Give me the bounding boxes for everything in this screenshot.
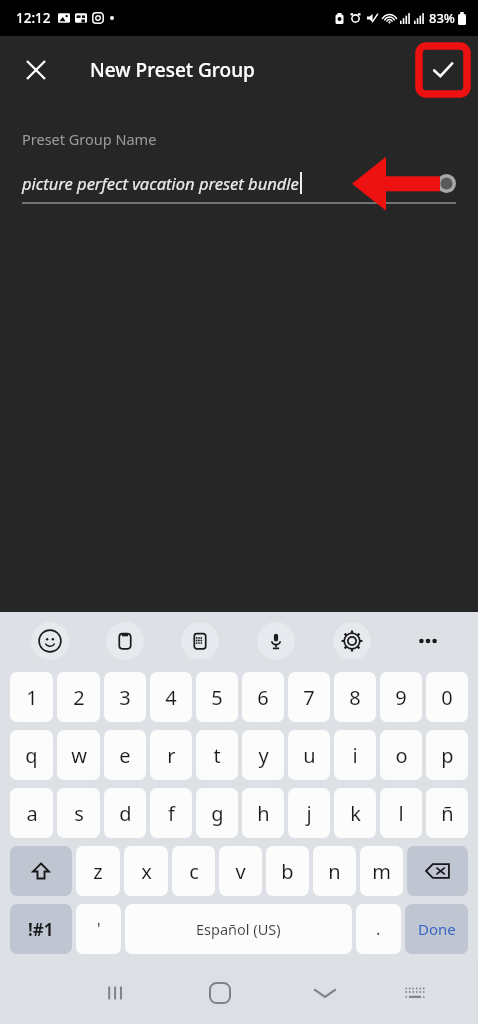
staticText: 83% [429,9,455,27]
button[interactable]: q [10,730,53,780]
button[interactable]: 5 [196,672,238,722]
button[interactable]: z [76,846,120,896]
button[interactable]: k [334,788,376,838]
button[interactable]: o [380,730,422,780]
button[interactable]: t [196,730,238,780]
button[interactable]: Switch keyboard [371,962,459,1024]
button[interactable]: d [104,788,146,838]
staticText: d [119,800,132,827]
button[interactable]: . [356,904,401,954]
staticText: l [398,800,404,827]
button[interactable]: u [288,730,330,780]
button[interactable]: w [57,730,100,780]
button[interactable]: l [380,788,422,838]
staticText: c [189,858,199,885]
button[interactable]: n [313,846,356,896]
button[interactable]: 9 [380,672,422,722]
staticText: Español (US) [196,919,281,939]
button[interactable]: p [426,730,468,780]
staticText: z [93,858,103,885]
staticText: 4 [165,684,177,711]
button[interactable]: e [104,730,146,780]
staticText: f [168,800,175,827]
button[interactable]: Close [12,46,60,94]
button[interactable]: !#1 [10,904,72,954]
other: Clear [437,174,456,193]
button[interactable]: 6 [242,672,284,722]
button[interactable]: x [124,846,168,896]
staticText: b [281,858,294,885]
button[interactable]: Emoji [12,616,87,666]
staticText: . [376,918,381,940]
staticText: picture perfect vacation preset bundle [22,172,299,194]
button[interactable]: Shift [10,846,72,896]
button[interactable]: m [360,846,403,896]
staticText: 7 [303,684,315,711]
staticText: i [352,742,358,769]
staticText: ' [97,918,101,940]
staticText: 6 [257,684,269,711]
button[interactable]: Recents [69,962,162,1024]
button[interactable]: 0 [426,672,468,722]
button[interactable]: 4 [150,672,192,722]
button[interactable]: Done [405,904,468,954]
button[interactable]: i [334,730,376,780]
button[interactable]: 3 [104,672,146,722]
staticText: e [119,742,131,769]
staticText: 5 [211,684,223,711]
button[interactable]: Clipboard [87,616,162,666]
button[interactable]: r [150,730,192,780]
staticText: 12:12 [16,9,51,27]
button[interactable]: s [57,788,100,838]
staticText: 2 [73,684,85,711]
button[interactable]: 7 [288,672,330,722]
button[interactable]: Settings [314,616,390,666]
staticText: Preset Group Name [22,129,157,149]
staticText: m [372,858,391,885]
staticText: !#1 [28,918,54,941]
button[interactable]: Backspace [407,846,468,896]
staticText: 0 [441,684,453,711]
staticText: 9 [395,684,407,711]
staticText: q [25,742,38,769]
button[interactable]: h [242,788,284,838]
staticText: h [257,800,270,827]
staticText: a [26,800,38,827]
button[interactable]: b [266,846,309,896]
button[interactable]: f [150,788,192,838]
button[interactable]: ñ [426,788,468,838]
staticText: Done [418,919,456,939]
button[interactable]: c [172,846,215,896]
staticText: n [328,858,341,885]
button[interactable]: picture perfect vacation preset bundle [22,162,456,204]
button[interactable]: v [219,846,262,896]
button[interactable]: ' [76,904,121,954]
staticText: k [350,800,361,827]
staticText: s [74,800,84,827]
staticText: o [395,742,408,769]
button[interactable]: Keyboard modes [162,616,238,666]
staticText: w [71,742,87,769]
button[interactable]: 8 [334,672,376,722]
staticText: 8 [349,684,361,711]
button[interactable]: 1 [10,672,53,722]
button[interactable]: Español (US) [125,904,352,954]
staticText: New Preset Group [90,57,255,83]
button[interactable]: More options [390,616,466,666]
staticText: g [211,800,224,827]
button[interactable]: a [10,788,53,838]
button[interactable]: 2 [57,672,100,722]
button[interactable]: y [242,730,284,780]
staticText: j [306,800,312,827]
staticText: 3 [119,684,131,711]
staticText: y [258,742,269,769]
button[interactable]: Save [417,44,469,96]
button[interactable]: Voice input [238,616,314,666]
staticText: u [303,742,316,769]
staticText: 1 [26,684,38,711]
button[interactable]: j [288,788,330,838]
staticText: ñ [441,800,454,827]
button[interactable]: g [196,788,238,838]
button[interactable]: Hide keyboard [278,962,371,1024]
button[interactable]: Home [162,962,278,1024]
